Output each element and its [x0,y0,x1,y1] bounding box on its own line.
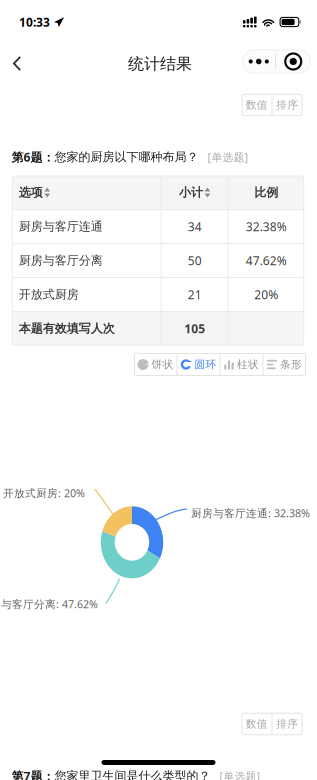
button[interactable]: 饼状 [134,353,176,375]
staticText: 本题有效填写人次 [19,321,115,336]
staticText: 第7题： [11,768,54,780]
staticText: 柱状 [237,358,259,371]
button[interactable]: 返回 [0,44,34,82]
staticText: 开放式厨房: 20% [3,486,85,500]
staticText: 47.62% [246,252,287,268]
staticText: 排序 [276,717,298,730]
staticText: 厨房与客厅分离 [19,253,103,268]
staticText: 统计结果 [128,54,192,74]
button[interactable]: 条形 [263,353,305,375]
button[interactable]: 数值 [242,713,271,735]
staticText: 50 [188,252,202,268]
staticText: 21 [188,286,202,302]
button[interactable]: 更多 [242,50,310,73]
staticText: 105 [184,320,205,336]
staticText: 您家的厨房以下哪种布局？ [54,150,198,164]
staticText: 数值 [246,717,268,730]
button[interactable]: 柱状 [220,353,262,375]
staticText: 厨房与客厅分离: 47.62% [0,597,98,611]
button[interactable]: 数值 [242,94,271,116]
staticText: 20% [254,286,278,302]
staticText: 34 [188,218,202,234]
staticText: 厨房与客厅连通: 32.38% [191,506,310,520]
staticText: 选项 [19,185,43,200]
staticText: 开放式厨房 [19,287,79,302]
staticText: 您家里卫生间是什么类型的？ [54,769,210,780]
staticText: 数值 [246,98,268,111]
staticText: 小计 [179,185,203,200]
staticText: 厨房与客厅连通 [19,219,103,234]
staticText: [单选题] [198,150,248,164]
staticText: [单选题] [210,769,260,780]
button[interactable]: 排序 [272,94,302,116]
staticText: 排序 [276,98,298,111]
staticText: 32.38% [246,218,287,234]
button[interactable]: 排序 [272,713,302,735]
button[interactable]: 圆环 [177,353,219,375]
staticText: 第6题： [11,149,54,165]
staticText: 饼状 [151,358,173,371]
staticText: 比例 [254,185,278,200]
staticText: 10:33 [19,14,50,30]
staticText: 条形 [280,358,302,371]
staticText: 圆环 [194,358,216,371]
